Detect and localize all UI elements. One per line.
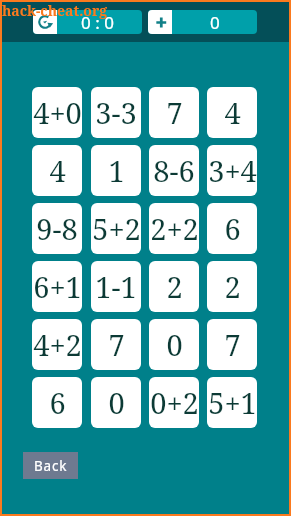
other: Restart (36, 13, 54, 31)
staticText: 7 (224, 325, 241, 364)
staticText: 4+2 (33, 325, 82, 364)
staticText: 0+2 (150, 383, 199, 422)
button[interactable]: 1-1 (91, 261, 141, 312)
staticText: 4+0 (33, 93, 82, 132)
staticText: 7 (166, 93, 183, 132)
other: Add (154, 16, 167, 29)
staticText: 7 (108, 325, 125, 364)
button[interactable]: 1 (91, 145, 141, 196)
button[interactable]: 3-3 (91, 87, 141, 138)
button[interactable]: 4 (207, 87, 257, 138)
button[interactable]: 0 (149, 319, 199, 370)
staticText: 6 (224, 209, 241, 248)
staticText: 5+1 (208, 383, 257, 422)
button[interactable]: 9-8 (32, 203, 82, 254)
button[interactable]: 4+2 (32, 319, 82, 370)
staticText: 0 (108, 383, 125, 422)
button[interactable]: 7 (207, 319, 257, 370)
staticText: Back (34, 457, 68, 475)
staticText: 2 (224, 267, 241, 306)
staticText: 1 (108, 151, 125, 190)
button[interactable]: 7 (91, 319, 141, 370)
button[interactable]: 2+2 (149, 203, 199, 254)
button[interactable]: Restart timer 0:0 (33, 10, 142, 34)
staticText: 6+1 (33, 267, 82, 306)
staticText: 2+2 (150, 209, 199, 248)
button[interactable]: 0 (91, 377, 141, 428)
staticText: 0:0 (81, 11, 119, 34)
staticText: 3+4 (208, 151, 257, 190)
staticText: 8-6 (153, 151, 195, 190)
staticText: 4 (224, 93, 241, 132)
button[interactable]: 2 (149, 261, 199, 312)
staticText: 1-1 (95, 267, 137, 306)
button[interactable]: 5+1 (207, 377, 257, 428)
button[interactable]: 8-6 (149, 145, 199, 196)
button[interactable]: 6 (207, 203, 257, 254)
staticText: 3-3 (95, 93, 137, 132)
button[interactable]: Back (23, 452, 78, 479)
button[interactable]: 6 (32, 377, 82, 428)
button[interactable]: 5+2 (91, 203, 141, 254)
staticText: 0 (210, 11, 220, 34)
staticText: 2 (166, 267, 183, 306)
button[interactable]: 4+0 (32, 87, 82, 138)
button[interactable]: 4 (32, 145, 82, 196)
button[interactable]: Score 0 (148, 10, 257, 34)
button[interactable]: 6+1 (32, 261, 82, 312)
staticText: 4 (49, 151, 66, 190)
staticText: 6 (49, 383, 66, 422)
button[interactable]: 7 (149, 87, 199, 138)
staticText: 9-8 (36, 209, 78, 248)
staticText: 0 (166, 325, 183, 364)
staticText: 5+2 (92, 209, 141, 248)
button[interactable]: 0+2 (149, 377, 199, 428)
button[interactable]: 2 (207, 261, 257, 312)
staticText: hack-cheat.org (2, 1, 108, 20)
button[interactable]: 3+4 (207, 145, 257, 196)
